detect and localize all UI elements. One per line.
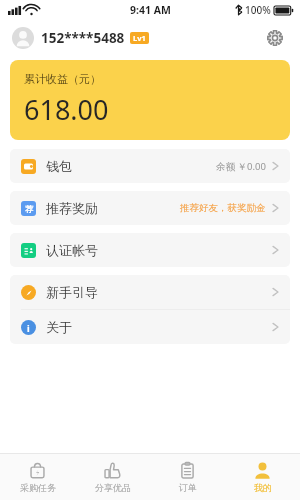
staticText: 关于 (46, 319, 72, 335)
button[interactable]: 钱包 (10, 149, 290, 183)
button[interactable]: 累计收益（元） (10, 60, 290, 140)
staticText: 推荐奖励 (46, 200, 98, 216)
staticText: 152****5488 (41, 29, 125, 47)
button[interactable]: 订单 (150, 454, 225, 500)
staticText: 钱包 (46, 158, 72, 174)
staticText: 推荐好友，获奖励金 (180, 202, 266, 214)
staticText: Lv1 (133, 33, 146, 43)
staticText: 618.00 (24, 91, 109, 128)
button[interactable]: 分享优品 (75, 454, 150, 500)
button[interactable]: 新手引导 (10, 275, 290, 309)
staticText: 累计收益（元） (24, 72, 101, 86)
staticText: 余额 ￥0.00 (216, 160, 266, 173)
staticText: 认证帐号 (46, 242, 98, 258)
staticText: 100% (245, 3, 271, 17)
staticText: 分享优品 (95, 482, 131, 493)
button[interactable]: 采购任务 (0, 454, 75, 500)
staticText: 新手引导 (46, 284, 98, 300)
staticText: 9:41 AM (130, 3, 171, 17)
staticText: 采购任务 (20, 482, 56, 493)
button[interactable]: i (10, 310, 290, 344)
button[interactable]: Settings (262, 25, 288, 51)
staticText: 荐 (25, 204, 33, 214)
button[interactable]: 我的 (225, 454, 300, 500)
button[interactable]: 认证帐号 (10, 233, 290, 267)
staticText: i (27, 322, 30, 334)
button[interactable] (12, 27, 34, 49)
staticText: 订单 (179, 482, 197, 493)
button[interactable]: 荐 (10, 191, 290, 225)
staticText: 我的 (254, 482, 272, 493)
